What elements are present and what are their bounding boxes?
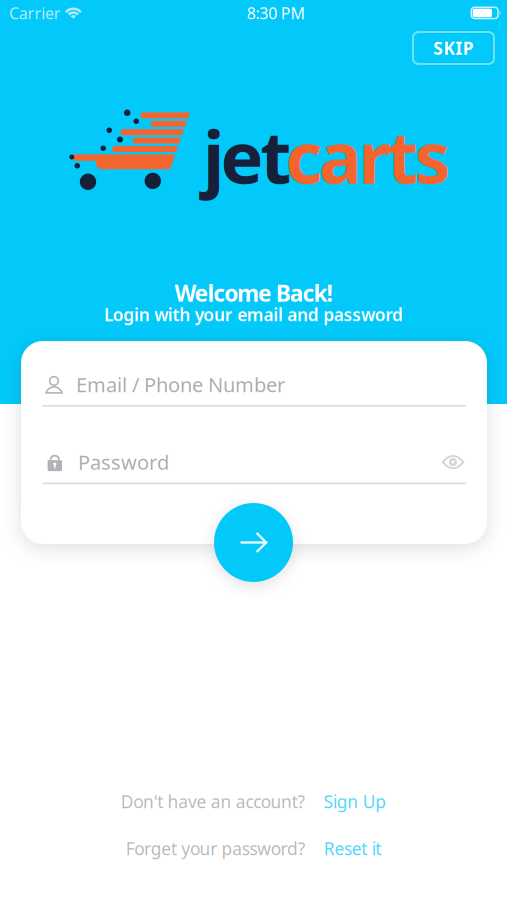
staticText: carts — [285, 108, 451, 204]
staticText: Reset it — [324, 837, 381, 860]
staticText: Email / Phone Number — [76, 371, 285, 398]
button[interactable]: Reset it — [306, 837, 381, 860]
staticText: jet — [203, 108, 291, 204]
staticText: Forget your password? — [126, 837, 306, 860]
button[interactable]: Log in — [214, 503, 293, 582]
staticText: Welcome Back! — [175, 278, 332, 308]
button[interactable]: SKIP — [412, 31, 495, 65]
staticText: 8:30 PM — [247, 2, 306, 24]
staticText: Sign Up — [323, 790, 386, 813]
staticText: Password — [78, 449, 169, 475]
button[interactable]: Show password — [436, 447, 466, 477]
staticText: Login with your email and password — [104, 303, 403, 326]
staticText: Don't have an account? — [121, 790, 305, 813]
staticText: SKIP — [433, 36, 474, 59]
staticText: Carrier — [9, 2, 61, 24]
button[interactable]: Email / Phone Number — [42, 364, 466, 407]
button[interactable]: Sign Up — [305, 790, 386, 813]
